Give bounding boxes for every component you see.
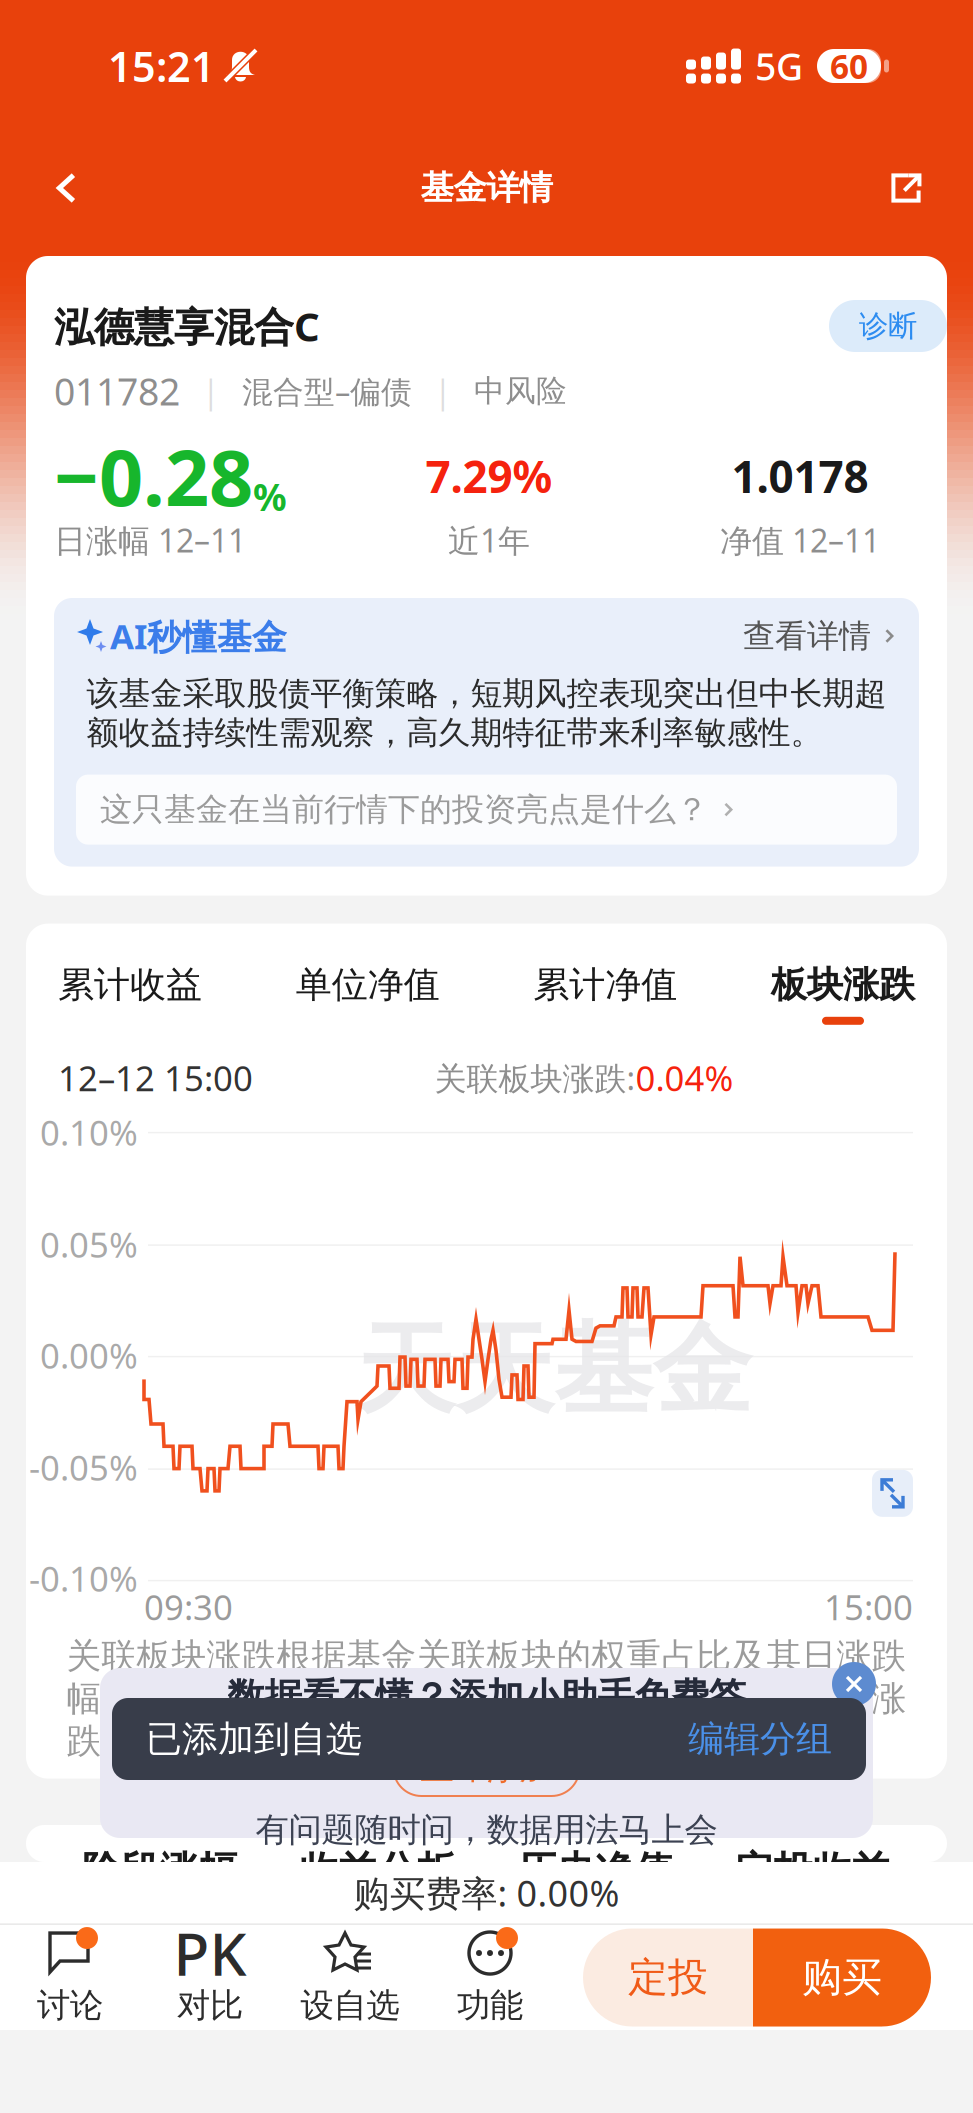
staticText: 阶段涨幅 <box>82 1847 238 1894</box>
staticText: 混合型–偏债 <box>242 371 412 411</box>
button[interactable]: 立即添加 <box>393 1740 579 1796</box>
staticText: 60 <box>830 44 868 88</box>
staticText: 已添加到自选 <box>146 1717 362 1761</box>
button[interactable]: 功能 <box>420 1929 560 2026</box>
staticText: 关联板块涨跌: <box>434 1057 635 1099</box>
staticText: 泓德慧享混合C <box>54 299 320 352</box>
staticText: PK <box>173 1914 246 1992</box>
staticText: 基金详情 <box>420 167 552 208</box>
staticText: 累计净值 <box>533 963 677 1007</box>
button[interactable]: 板块涨跌 <box>771 963 915 1025</box>
staticText: 查看详情 <box>743 616 871 656</box>
button[interactable]: 购买 <box>753 1928 931 2026</box>
staticText: 7.29% <box>425 447 552 505</box>
button[interactable]: 诊断 <box>829 300 947 352</box>
staticText: 0.10% <box>40 1109 138 1155</box>
staticText: 有问题随时问，数据用法马上会 <box>255 1809 717 1850</box>
button[interactable]: 这只基金在当前行情下的投资亮点是什么？ <box>76 775 897 845</box>
staticText: 购买费率: 0.00% <box>353 1869 619 1917</box>
staticText: % <box>253 472 287 521</box>
staticText: 0.04% <box>635 1055 733 1101</box>
staticText: 011782 <box>54 366 180 416</box>
staticText: 板块涨跌 <box>771 963 915 1007</box>
staticText: 单位净值 <box>296 963 440 1007</box>
button[interactable]: PK <box>140 1929 280 2026</box>
button[interactable]: Share <box>863 145 949 231</box>
staticText: 数据看不懂？添加小助手免费答 <box>227 1674 745 1720</box>
staticText: 购买 <box>802 1953 882 2002</box>
staticText: 设自选 <box>300 1985 399 2026</box>
staticText: 功能 <box>457 1985 523 2026</box>
staticText: 这只基金在当前行情下的投资亮点是什么？ <box>100 790 708 829</box>
staticText: 1.0178 <box>731 447 868 505</box>
staticText: AI秒懂基金 <box>110 613 287 659</box>
button[interactable]: 单位净值 <box>296 963 440 1025</box>
staticText: 关联板块涨跌根据基金关联板块的权重占比及其日涨跌幅加权计算得出，仅供参考；板块涨… <box>66 1635 906 1763</box>
button[interactable]: 累计收益 <box>58 963 202 1025</box>
button[interactable]: 历史净值 <box>517 1847 673 1894</box>
button[interactable]: Back <box>24 145 110 231</box>
staticText: 净值 12–11 <box>720 519 880 561</box>
staticText: 0.05% <box>40 1221 138 1267</box>
staticText: 立即添加 <box>420 1747 552 1788</box>
button[interactable]: Expand chart <box>872 1470 913 1517</box>
staticText: | <box>202 370 220 412</box>
button[interactable]: 讨论 <box>0 1929 140 2026</box>
staticText: 收益分析 <box>300 1847 456 1894</box>
button[interactable]: Close <box>832 1662 876 1706</box>
staticText: 12–12 15:00 <box>58 1055 253 1101</box>
staticText: 0.00% <box>40 1332 138 1378</box>
staticText: 09:30 <box>144 1584 233 1630</box>
button[interactable]: 编辑分组 <box>688 1717 832 1761</box>
staticText: 对比 <box>177 1985 243 2026</box>
staticText: -0.05% <box>29 1444 138 1490</box>
staticText: | <box>434 370 452 412</box>
staticText: 该基金采取股债平衡策略，短期风控表现突出但中长期超额收益持续性需观察，高久期特征… <box>86 674 886 753</box>
button[interactable]: 定投收益 <box>735 1847 891 1894</box>
staticText: 诊断 <box>859 308 917 344</box>
staticText: 天天基金 <box>356 1310 752 1431</box>
staticText: 日涨幅 12–11 <box>54 519 246 561</box>
staticText: −0.28 <box>54 425 253 527</box>
staticText: 讨论 <box>37 1985 103 2026</box>
button[interactable]: 收益分析 <box>300 1847 456 1894</box>
button[interactable]: 设自选 <box>280 1929 420 2026</box>
staticText: 定投收益 <box>735 1847 891 1894</box>
staticText: 15:00 <box>824 1584 913 1630</box>
staticText: 中风险 <box>474 372 567 410</box>
staticText: 5G <box>755 41 803 91</box>
staticText: 累计收益 <box>58 963 202 1007</box>
button[interactable]: 定投 <box>583 1928 753 2026</box>
staticText: 近1年 <box>448 519 530 561</box>
staticText: -0.10% <box>29 1555 138 1601</box>
staticText: 编辑分组 <box>688 1717 832 1761</box>
staticText: 15:21 <box>108 39 215 93</box>
button[interactable]: 阶段涨幅 <box>82 1847 238 1894</box>
button[interactable]: 查看详情 <box>743 616 897 656</box>
button[interactable]: 累计净值 <box>533 963 677 1025</box>
staticText: 历史净值 <box>517 1847 673 1894</box>
staticText: 定投 <box>628 1953 708 2002</box>
